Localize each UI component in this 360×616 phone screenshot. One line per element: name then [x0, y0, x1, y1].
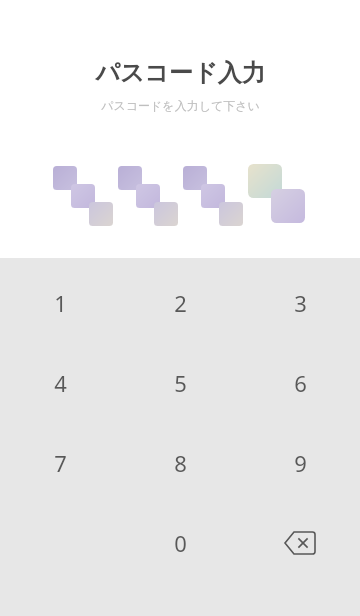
staticText: パスコード入力: [95, 58, 266, 88]
staticText: 7: [54, 448, 67, 478]
staticText: 6: [294, 368, 307, 398]
button[interactable]: 5: [120, 343, 240, 423]
button[interactable]: 9: [240, 423, 360, 503]
button[interactable]: 1: [0, 263, 120, 343]
button[interactable]: 8: [120, 423, 240, 503]
staticText: パスコードを入力して下さい: [101, 98, 260, 113]
button[interactable]: 4: [0, 343, 120, 423]
button[interactable]: 6: [240, 343, 360, 423]
staticText: 9: [294, 448, 307, 478]
button[interactable]: 2: [120, 263, 240, 343]
staticText: 4: [54, 368, 67, 398]
staticText: 5: [174, 368, 187, 398]
staticText: 1: [54, 288, 67, 318]
button[interactable]: 0: [120, 503, 240, 583]
staticText: 8: [174, 448, 187, 478]
staticText: 3: [294, 288, 307, 318]
staticText: 2: [174, 288, 187, 318]
button[interactable]: 7: [0, 423, 120, 503]
button[interactable]: 3: [240, 263, 360, 343]
staticText: 0: [174, 528, 187, 558]
button[interactable]: Backspace: [240, 503, 360, 583]
